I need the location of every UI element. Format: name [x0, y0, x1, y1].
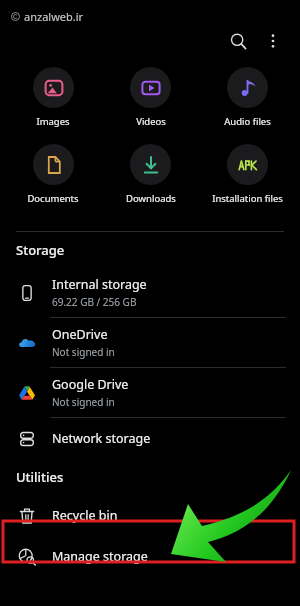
button[interactable]: Installation files	[199, 139, 296, 210]
button[interactable]: Recycle bin	[0, 495, 300, 536]
staticText: anzalweb.ir	[24, 9, 84, 24]
button[interactable]: Internal storage	[0, 268, 300, 318]
button[interactable]: Images	[4, 62, 102, 133]
button[interactable]: Search	[221, 24, 255, 58]
staticText: Installation files	[212, 192, 283, 205]
button[interactable]: Documents	[4, 139, 102, 210]
button[interactable]: Google Drive	[0, 368, 300, 418]
staticText: Google Drive	[52, 376, 129, 393]
staticText: Documents	[27, 192, 79, 205]
staticText: Videos	[136, 115, 166, 128]
staticText: Audio files	[224, 115, 271, 128]
button[interactable]: Network storage	[0, 418, 300, 459]
button[interactable]: Audio files	[199, 62, 296, 133]
staticText: Not signed in	[52, 345, 115, 359]
staticText: Manage storage	[52, 548, 148, 565]
staticText: Not signed in	[52, 395, 115, 409]
button[interactable]: Videos	[102, 62, 199, 133]
staticText: Storage	[16, 241, 65, 259]
staticText: Downloads	[126, 192, 176, 205]
staticText: 69.22 GB / 256 GB	[52, 295, 137, 309]
staticText: OneDrive	[52, 326, 108, 343]
staticText: Utilities	[16, 468, 64, 486]
staticText: Recycle bin	[52, 507, 118, 524]
button[interactable]: OneDrive	[0, 318, 300, 368]
staticText: Images	[36, 115, 70, 128]
staticText: Internal storage	[52, 276, 147, 293]
button[interactable]: Downloads	[102, 139, 199, 210]
button[interactable]: More options	[257, 25, 289, 57]
button[interactable]: Manage storage	[0, 536, 300, 577]
staticText: Network storage	[52, 430, 151, 447]
